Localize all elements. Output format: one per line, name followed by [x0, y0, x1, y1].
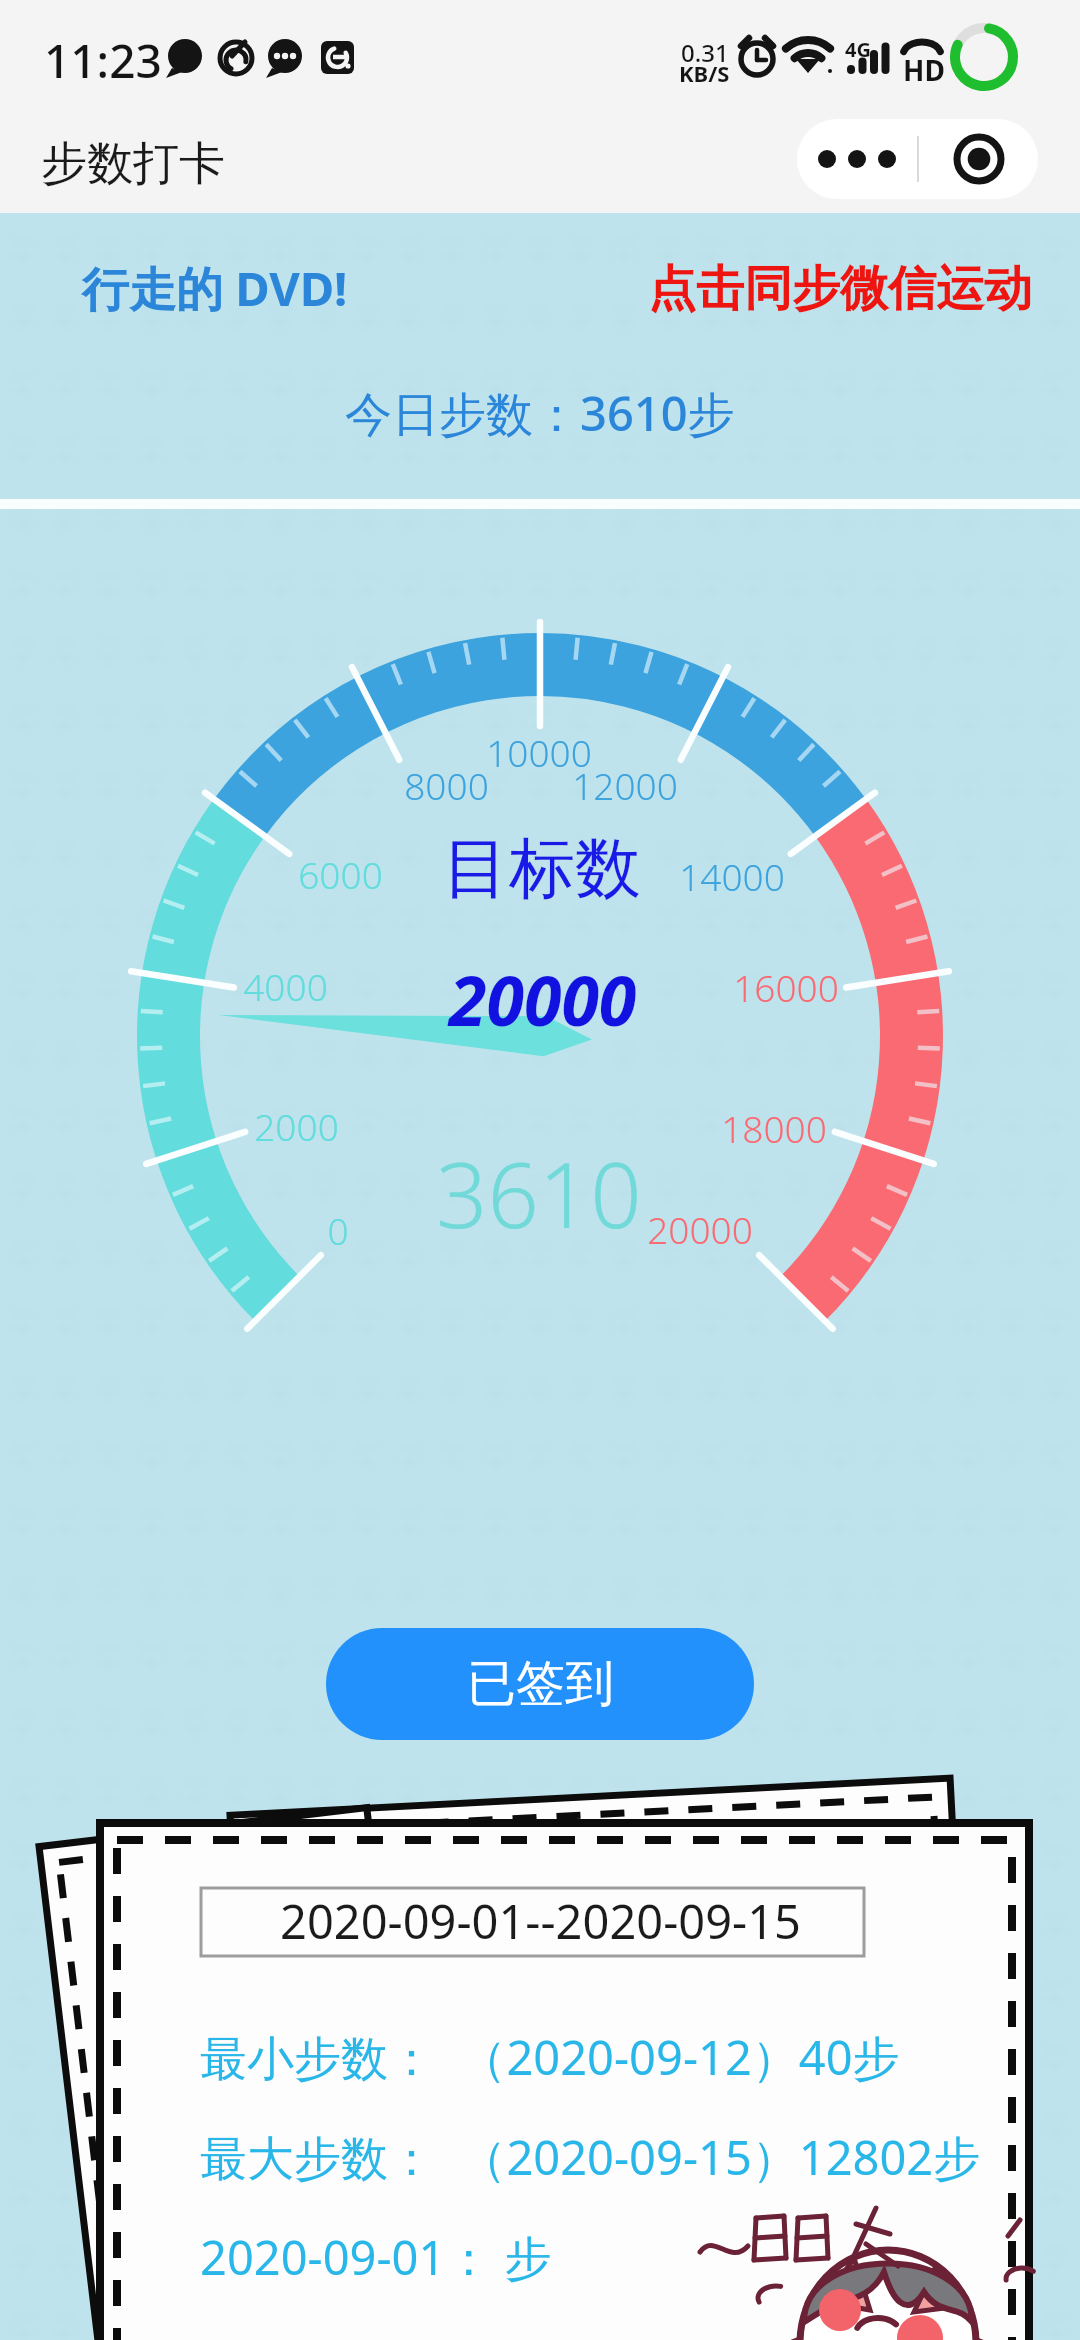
staticText: 18000: [721, 1103, 827, 1153]
staticText: 8000: [404, 760, 489, 810]
staticText: 已签到: [467, 1653, 614, 1715]
staticText: 最小步数： （2020-09-12）40步: [200, 2025, 900, 2089]
staticText: 12000: [572, 760, 678, 810]
staticText: 最大步数： （2020-09-15）12802步: [200, 2125, 981, 2189]
staticText: 6000: [298, 849, 383, 899]
button[interactable]: More: [797, 119, 917, 199]
staticText: 行走的 DVD!: [82, 256, 348, 320]
staticText: 0: [327, 1205, 349, 1255]
staticText: 11:23: [44, 29, 162, 92]
staticText: 14000: [679, 851, 785, 901]
staticText: 2020-09-01： 步: [200, 2225, 552, 2289]
staticText: HD: [903, 51, 945, 89]
staticText: 2020-09-01--2020-09-15: [280, 1889, 801, 1953]
staticText: 3610: [436, 1132, 642, 1255]
staticText: 4000: [243, 961, 328, 1011]
staticText: 步数打卡: [41, 135, 225, 193]
button[interactable]: 已签到: [326, 1628, 754, 1740]
staticText: 10000: [486, 727, 592, 777]
staticText: 目标数: [443, 827, 641, 910]
staticText: 4G: [845, 36, 871, 63]
staticText: 20000: [647, 1204, 753, 1254]
staticText: KB/S: [679, 58, 730, 88]
staticText: 2000: [254, 1101, 339, 1151]
button[interactable]: Close mini program: [919, 119, 1038, 199]
staticText: 16000: [733, 962, 839, 1012]
staticText: 今日步数：3610步: [345, 381, 735, 445]
staticText: 20000: [449, 953, 637, 1046]
staticText: 0.31: [681, 36, 729, 69]
button[interactable]: 点击同步微信运动: [648, 259, 1032, 319]
